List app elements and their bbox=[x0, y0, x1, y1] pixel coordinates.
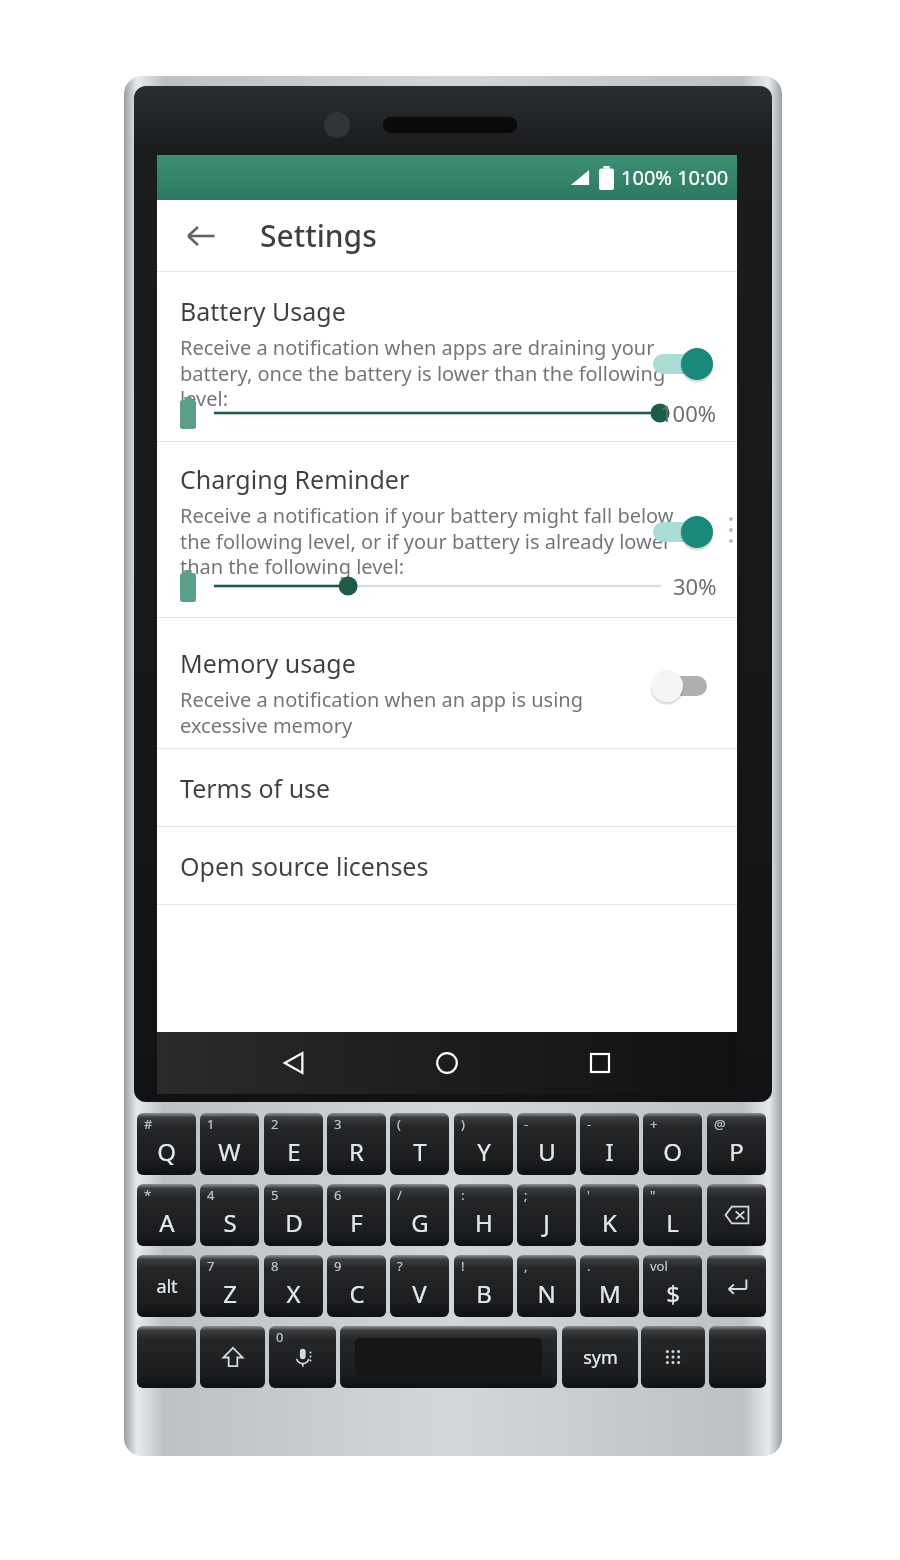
staticText: 6 bbox=[334, 1186, 342, 1204]
button[interactable]: - bbox=[580, 1113, 639, 1175]
button[interactable]: ! bbox=[454, 1255, 513, 1317]
staticText: K bbox=[602, 1206, 617, 1239]
staticText: 3 bbox=[334, 1115, 342, 1133]
staticText: 30% bbox=[673, 571, 717, 601]
staticText: - bbox=[524, 1115, 529, 1133]
button[interactable]: . bbox=[580, 1255, 639, 1317]
button[interactable] bbox=[649, 344, 715, 384]
staticText: G bbox=[411, 1206, 429, 1239]
staticText: Receive a notification when apps are dra… bbox=[180, 334, 666, 411]
button[interactable]: * bbox=[137, 1184, 196, 1246]
button[interactable]: 4 bbox=[200, 1184, 259, 1246]
button[interactable]: sym bbox=[562, 1326, 638, 1388]
button[interactable]: 0 bbox=[269, 1326, 336, 1388]
button[interactable]: 5 bbox=[264, 1184, 323, 1246]
staticText: U bbox=[538, 1135, 556, 1168]
staticText: # bbox=[144, 1115, 153, 1133]
staticText: 9 bbox=[334, 1257, 342, 1275]
button[interactable]: Home bbox=[424, 1040, 470, 1086]
button[interactable] bbox=[709, 1326, 766, 1388]
button[interactable]: " bbox=[643, 1184, 702, 1246]
button[interactable]: , bbox=[517, 1255, 576, 1317]
staticText: 0 bbox=[276, 1328, 284, 1346]
staticText: Receive a notification when an app is us… bbox=[180, 686, 583, 738]
button[interactable]: alt bbox=[137, 1255, 196, 1317]
staticText: X bbox=[286, 1277, 301, 1310]
staticText: Receive a notification if your battery m… bbox=[180, 502, 674, 579]
staticText: 1 bbox=[207, 1115, 215, 1133]
staticText: 100% bbox=[660, 398, 717, 428]
staticText: 2 bbox=[271, 1115, 279, 1133]
button[interactable]: - bbox=[517, 1113, 576, 1175]
staticText: Z bbox=[223, 1277, 237, 1310]
button[interactable]: : bbox=[454, 1184, 513, 1246]
staticText: ! bbox=[461, 1257, 465, 1275]
staticText: R bbox=[349, 1135, 364, 1168]
button[interactable]: + bbox=[643, 1113, 702, 1175]
button[interactable]: @ bbox=[707, 1113, 766, 1175]
staticText: : bbox=[461, 1186, 465, 1204]
button[interactable]: Memory usage bbox=[157, 618, 737, 748]
button[interactable]: vol bbox=[643, 1255, 702, 1317]
button[interactable]: 3 bbox=[327, 1113, 386, 1175]
staticText: D bbox=[285, 1206, 303, 1239]
button[interactable]: 1 bbox=[200, 1113, 259, 1175]
staticText: Memory usage bbox=[180, 646, 356, 680]
button[interactable]: Charging Reminder bbox=[157, 442, 737, 617]
staticText: Q bbox=[157, 1135, 176, 1168]
button[interactable] bbox=[707, 1184, 766, 1246]
staticText: ; bbox=[524, 1186, 528, 1204]
button[interactable]: ? bbox=[390, 1255, 449, 1317]
staticText: V bbox=[412, 1277, 427, 1310]
button[interactable]: / bbox=[390, 1184, 449, 1246]
staticText: 100% 10:00 bbox=[621, 164, 729, 191]
button[interactable]: # bbox=[137, 1113, 196, 1175]
staticText: C bbox=[349, 1277, 365, 1310]
button[interactable] bbox=[707, 1255, 766, 1317]
staticText: 5 bbox=[271, 1186, 279, 1204]
button[interactable]: Back bbox=[177, 212, 225, 260]
button[interactable] bbox=[649, 666, 715, 706]
button[interactable]: Back bbox=[271, 1040, 317, 1086]
button[interactable] bbox=[641, 1326, 705, 1388]
staticText: alt bbox=[156, 1274, 178, 1299]
staticText: M bbox=[599, 1277, 621, 1310]
staticText: Battery Usage bbox=[180, 294, 346, 328]
button[interactable]: Battery Usage bbox=[157, 272, 737, 441]
button[interactable]: 6 bbox=[327, 1184, 386, 1246]
staticText: E bbox=[287, 1135, 301, 1168]
button[interactable] bbox=[137, 1326, 196, 1388]
staticText: / bbox=[397, 1186, 402, 1204]
staticText: H bbox=[475, 1206, 493, 1239]
button[interactable]: ; bbox=[517, 1184, 576, 1246]
button[interactable]: Recent apps bbox=[577, 1040, 623, 1086]
staticText: Charging Reminder bbox=[180, 462, 410, 496]
staticText: + bbox=[650, 1115, 658, 1133]
staticText: 8 bbox=[271, 1257, 279, 1275]
button[interactable] bbox=[200, 1326, 265, 1388]
button[interactable]: 9 bbox=[327, 1255, 386, 1317]
staticText: J bbox=[543, 1206, 550, 1239]
staticText: , bbox=[524, 1257, 528, 1275]
button[interactable]: ) bbox=[454, 1113, 513, 1175]
button[interactable] bbox=[649, 512, 715, 552]
staticText: F bbox=[350, 1206, 363, 1239]
staticText: W bbox=[218, 1135, 241, 1168]
button[interactable]: ( bbox=[390, 1113, 449, 1175]
button[interactable]: 8 bbox=[264, 1255, 323, 1317]
button[interactable]: Terms of use bbox=[157, 749, 737, 826]
staticText: @ bbox=[714, 1115, 726, 1133]
staticText: ? bbox=[397, 1257, 403, 1275]
staticText: sym bbox=[583, 1345, 618, 1370]
button[interactable] bbox=[340, 1326, 557, 1388]
button[interactable]: Open source licenses bbox=[157, 827, 737, 904]
staticText: T bbox=[413, 1135, 427, 1168]
button[interactable]: 2 bbox=[264, 1113, 323, 1175]
staticText: Open source licenses bbox=[180, 849, 429, 883]
staticText: Terms of use bbox=[180, 771, 331, 805]
staticText: $ bbox=[666, 1277, 680, 1310]
button[interactable]: ' bbox=[580, 1184, 639, 1246]
staticText: Y bbox=[477, 1135, 491, 1168]
button[interactable]: 7 bbox=[200, 1255, 259, 1317]
staticText: B bbox=[476, 1277, 492, 1310]
